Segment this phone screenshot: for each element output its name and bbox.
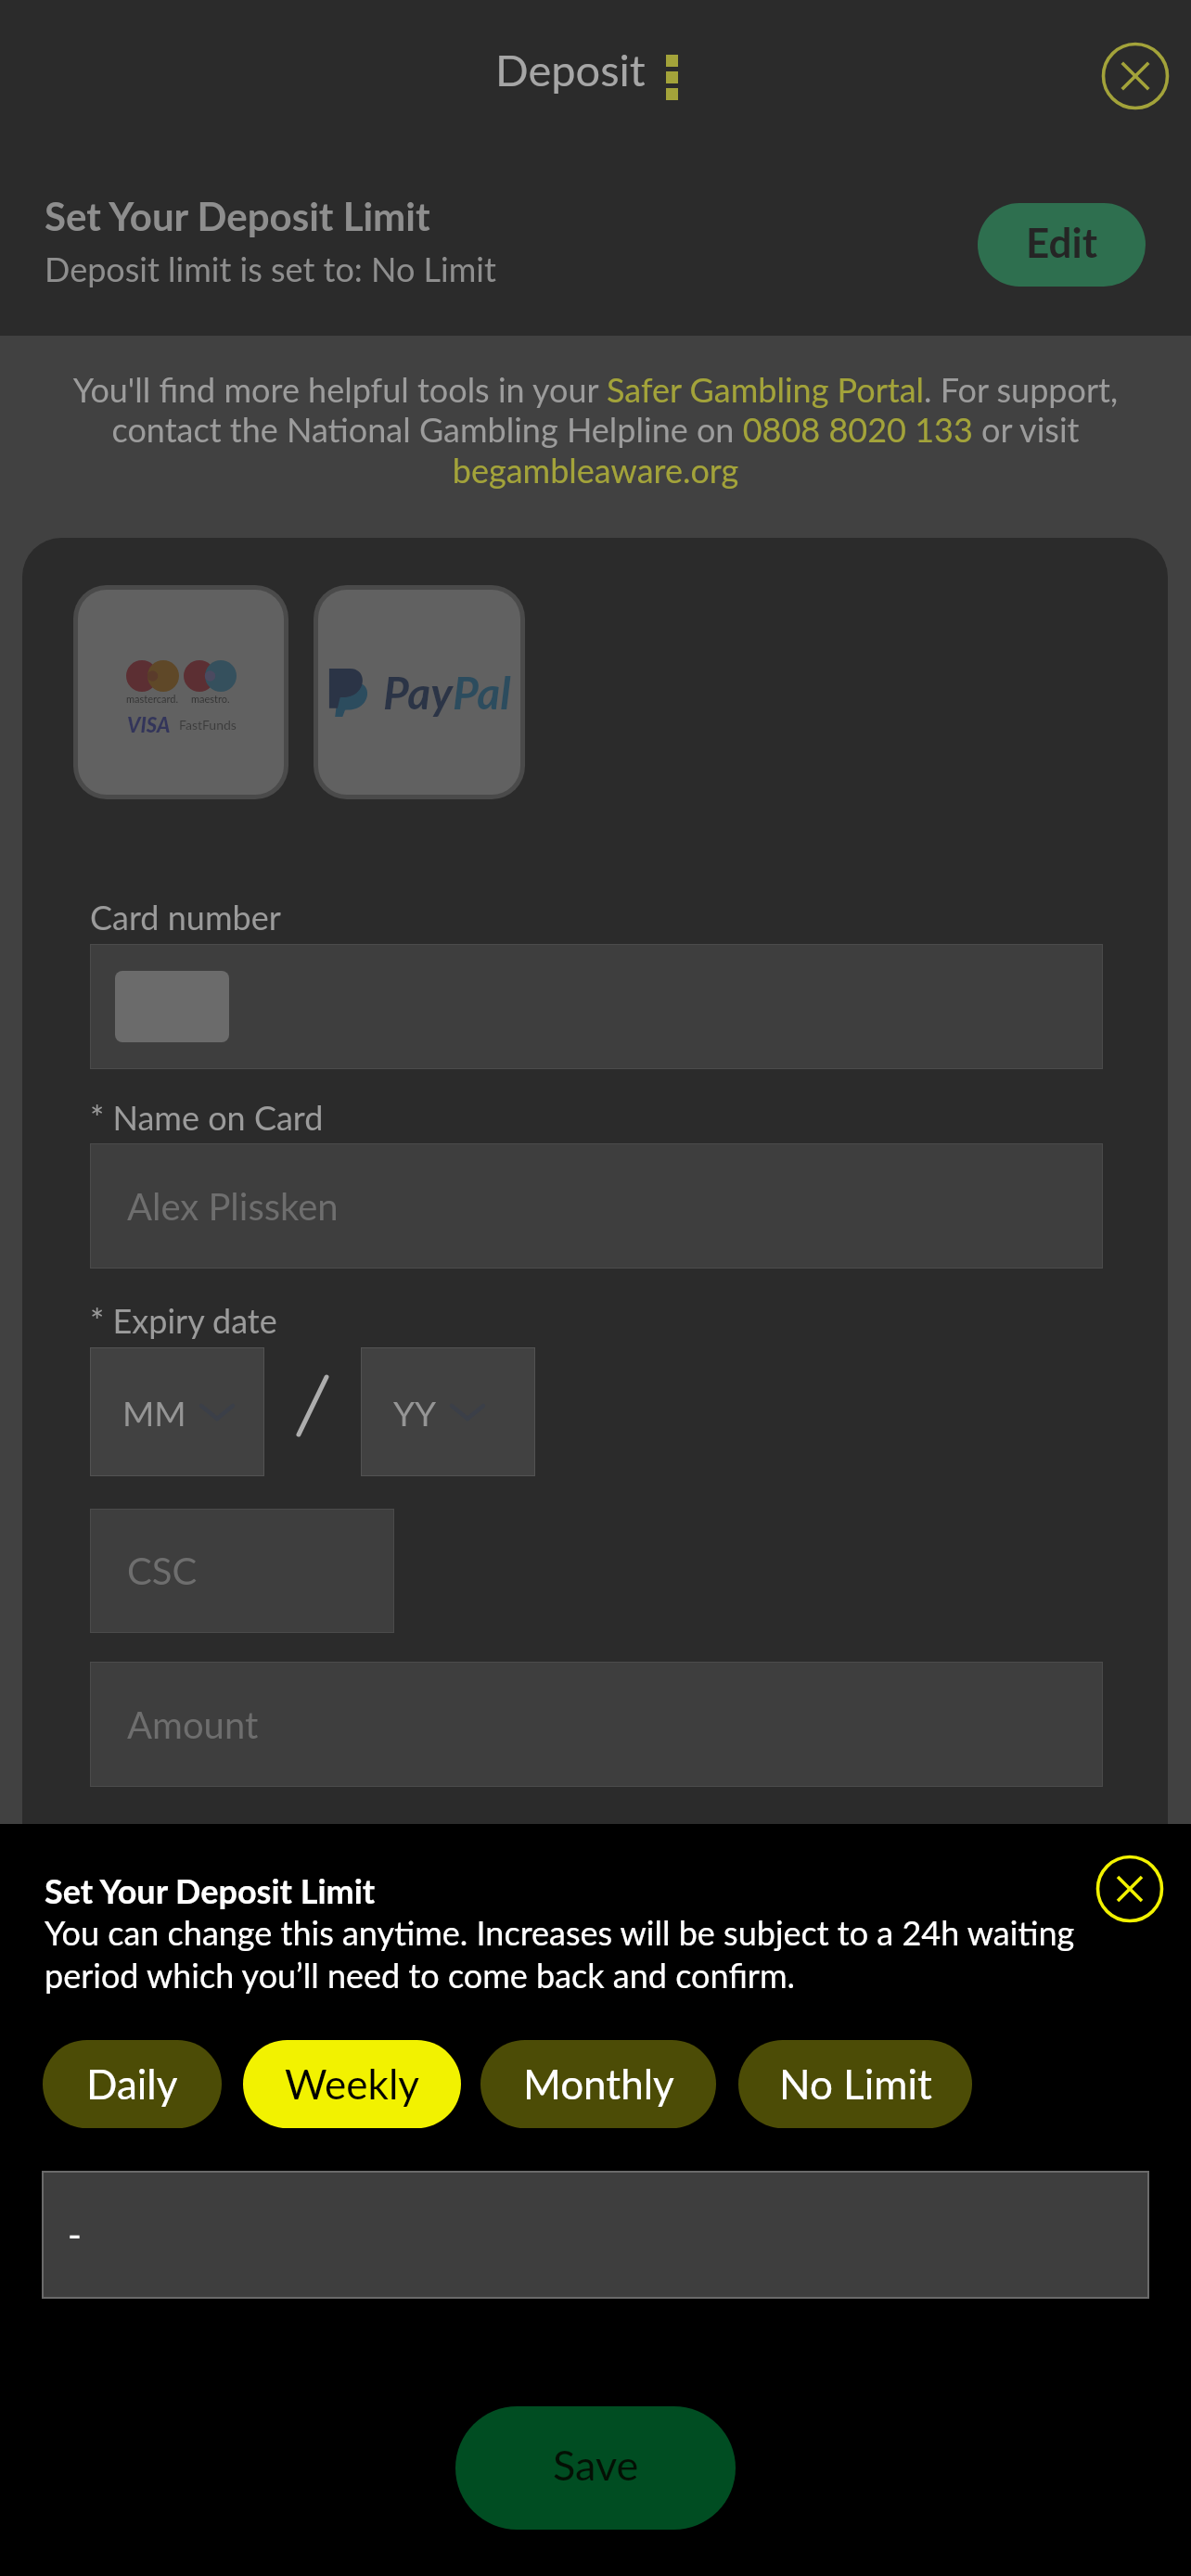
staticText: Pay [383,666,453,720]
button[interactable]: No Limit [738,2040,972,2128]
staticText: You'll find more helpful tools in your S… [56,369,1135,491]
staticText: maestro. [191,693,230,705]
staticText: Alex Plissken [127,1184,339,1229]
staticText: No Limit [779,2060,932,2109]
staticText: Pal [453,666,511,720]
button[interactable] [90,944,1103,1069]
staticText: You can change this anytime. Increases w… [45,1912,1093,1996]
staticText: Set Your Deposit Limit [45,193,430,239]
staticText: Weekly [285,2060,419,2109]
staticText: * Expiry date [90,1300,277,1340]
button[interactable]: Weekly [243,2040,461,2128]
staticText: Save [553,2440,639,2490]
button[interactable]: YY [361,1347,535,1476]
button[interactable]: Close deposit limit [1093,1852,1167,1926]
button[interactable]: Edit [978,203,1146,287]
button[interactable]: Monthly [480,2040,716,2128]
staticText: Monthly [523,2060,674,2109]
button[interactable]: CSC [90,1509,394,1633]
staticText: MM [122,1392,186,1433]
staticText: * Name on Card [90,1097,324,1137]
button[interactable]: Pay [318,590,520,795]
staticText: FastFunds [179,717,237,733]
button[interactable]: Save [455,2406,736,2530]
staticText: Set Your Deposit Limit [45,1870,376,1910]
button[interactable]: mastercard. [78,590,284,795]
staticText: Deposit [495,44,646,96]
staticText: Edit [1026,218,1098,267]
staticText: Daily [86,2060,178,2109]
button[interactable]: MM [90,1347,264,1476]
button[interactable]: Close [1095,35,1176,117]
button[interactable]: Amount [90,1662,1103,1787]
staticText: YY [393,1392,437,1433]
staticText: mastercard. [126,693,179,705]
staticText: Card number [90,897,281,937]
staticText: CSC [127,1549,198,1593]
button[interactable]: - [42,2171,1149,2299]
staticText: - [68,2213,82,2257]
staticText: VISA [127,712,171,736]
staticText: Amount [127,1702,259,1747]
button[interactable]: Daily [43,2040,222,2128]
button[interactable]: Alex Plissken [90,1143,1103,1269]
staticText: Deposit limit is set to: No Limit [45,249,496,288]
